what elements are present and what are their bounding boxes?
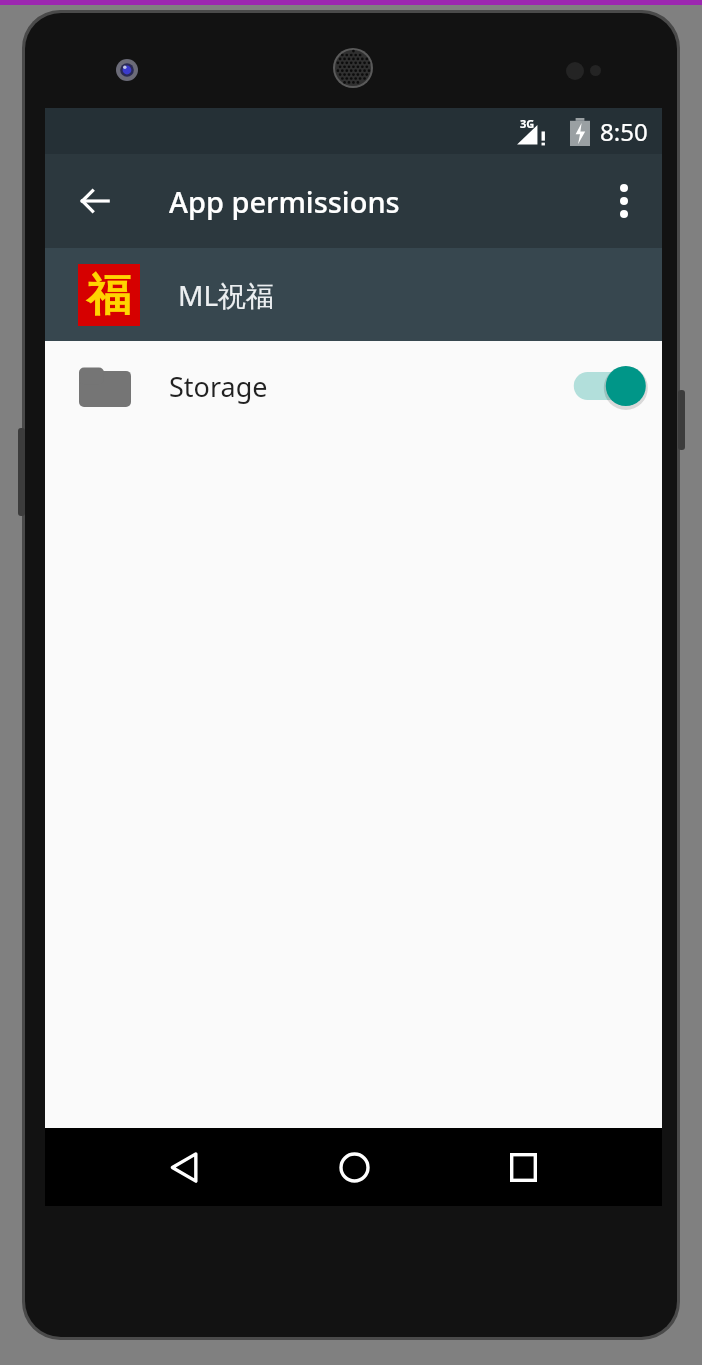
button[interactable]: More options — [596, 173, 652, 229]
button[interactable]: Back — [155, 1138, 213, 1196]
staticText: 福 — [87, 268, 131, 323]
staticText: Storage — [169, 368, 560, 405]
button[interactable]: Recent apps — [494, 1138, 552, 1196]
button[interactable]: 福 — [45, 248, 662, 341]
staticText: 8:50 — [600, 115, 648, 148]
button[interactable]: Back — [71, 177, 119, 225]
button[interactable]: Storage — [45, 341, 662, 431]
staticText: ML祝福 — [178, 276, 275, 314]
staticText: 3G — [520, 116, 535, 131]
button[interactable]: Storage permission toggle — [560, 356, 646, 416]
staticText: App permissions — [169, 182, 400, 221]
button[interactable]: Home — [325, 1138, 383, 1196]
